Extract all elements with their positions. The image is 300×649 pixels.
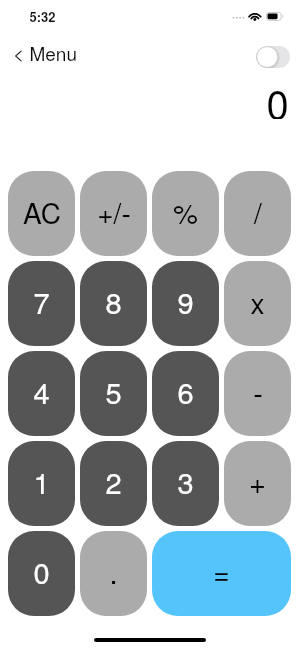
button[interactable]: x — [224, 261, 291, 346]
button[interactable]: +/- — [80, 171, 147, 256]
staticText: x — [250, 282, 265, 322]
button[interactable]: + — [224, 441, 291, 526]
button[interactable]: < Menu — [13, 39, 77, 66]
staticText: 7 — [33, 281, 50, 323]
staticText: 6 — [177, 371, 194, 413]
staticText: 1 — [33, 461, 50, 503]
button[interactable]: 4 — [8, 351, 75, 436]
staticText: . — [109, 551, 118, 593]
staticText: 0 — [33, 551, 50, 593]
staticText: % — [173, 192, 198, 232]
staticText: AC — [23, 192, 61, 232]
staticText: 5:32 — [29, 7, 56, 26]
staticText: 9 — [177, 281, 194, 323]
button[interactable]: 7 — [8, 261, 75, 346]
staticText: = — [213, 552, 230, 592]
button[interactable]: Toggle — [256, 46, 290, 68]
button[interactable]: 6 — [152, 351, 219, 436]
button[interactable]: AC — [8, 171, 75, 256]
staticText: 3 — [177, 461, 194, 503]
staticText: < Menu — [13, 39, 77, 66]
button[interactable]: / — [224, 171, 291, 256]
staticText: 5 — [105, 371, 122, 413]
button[interactable]: 5 — [80, 351, 147, 436]
staticText: 2 — [105, 461, 122, 503]
staticText: 8 — [105, 281, 122, 323]
button[interactable]: 2 — [80, 441, 147, 526]
button[interactable]: 3 — [152, 441, 219, 526]
button[interactable]: 0 — [8, 531, 75, 616]
staticText: 4 — [33, 371, 50, 413]
staticText: - — [253, 371, 263, 413]
button[interactable]: 1 — [8, 441, 75, 526]
staticText: 0 — [266, 73, 289, 119]
button[interactable]: 8 — [80, 261, 147, 346]
staticText: +/- — [97, 192, 131, 232]
button[interactable]: % — [152, 171, 219, 256]
button[interactable]: - — [224, 351, 291, 436]
staticText: + — [249, 461, 266, 503]
staticText: / — [254, 192, 262, 232]
button[interactable]: . — [80, 531, 147, 616]
button[interactable]: 9 — [152, 261, 219, 346]
button[interactable]: = — [152, 531, 291, 616]
